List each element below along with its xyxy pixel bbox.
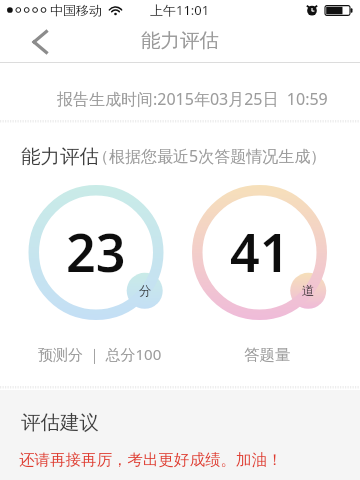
staticText: 还请再接再厉，考出更好成绩。加油！ <box>19 450 283 470</box>
staticText: 23 <box>66 216 126 278</box>
staticText: 预测分 ｜ 总分100 <box>38 344 162 364</box>
staticText: 报告生成时间:2015年03月25日 10:59 <box>57 88 328 110</box>
button[interactable]: Back <box>23 25 57 59</box>
staticText: 能力评估 <box>21 144 99 169</box>
staticText: 上午11:01 <box>150 1 210 19</box>
staticText: 答题量 <box>244 345 291 365</box>
staticText: 中国移动 <box>50 2 102 18</box>
staticText: 道 <box>302 283 315 299</box>
staticText: 能力评估 <box>141 28 219 53</box>
staticText: 评估建议 <box>21 410 99 435</box>
staticText: 41 <box>230 216 290 278</box>
staticText: 分 <box>139 283 152 299</box>
staticText: （根据您最近5次答题情况生成） <box>93 145 327 167</box>
